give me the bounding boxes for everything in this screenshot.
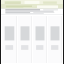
button[interactable]: Item 2 — [18, 16, 32, 63]
button[interactable]: Item 1 — [2, 16, 17, 63]
button[interactable]: Item 4 — [48, 16, 62, 63]
button[interactable]: Item 3 — [33, 16, 47, 63]
button[interactable]: Featured header — [1, 0, 63, 9]
button[interactable]: Details — [1, 9, 63, 15]
